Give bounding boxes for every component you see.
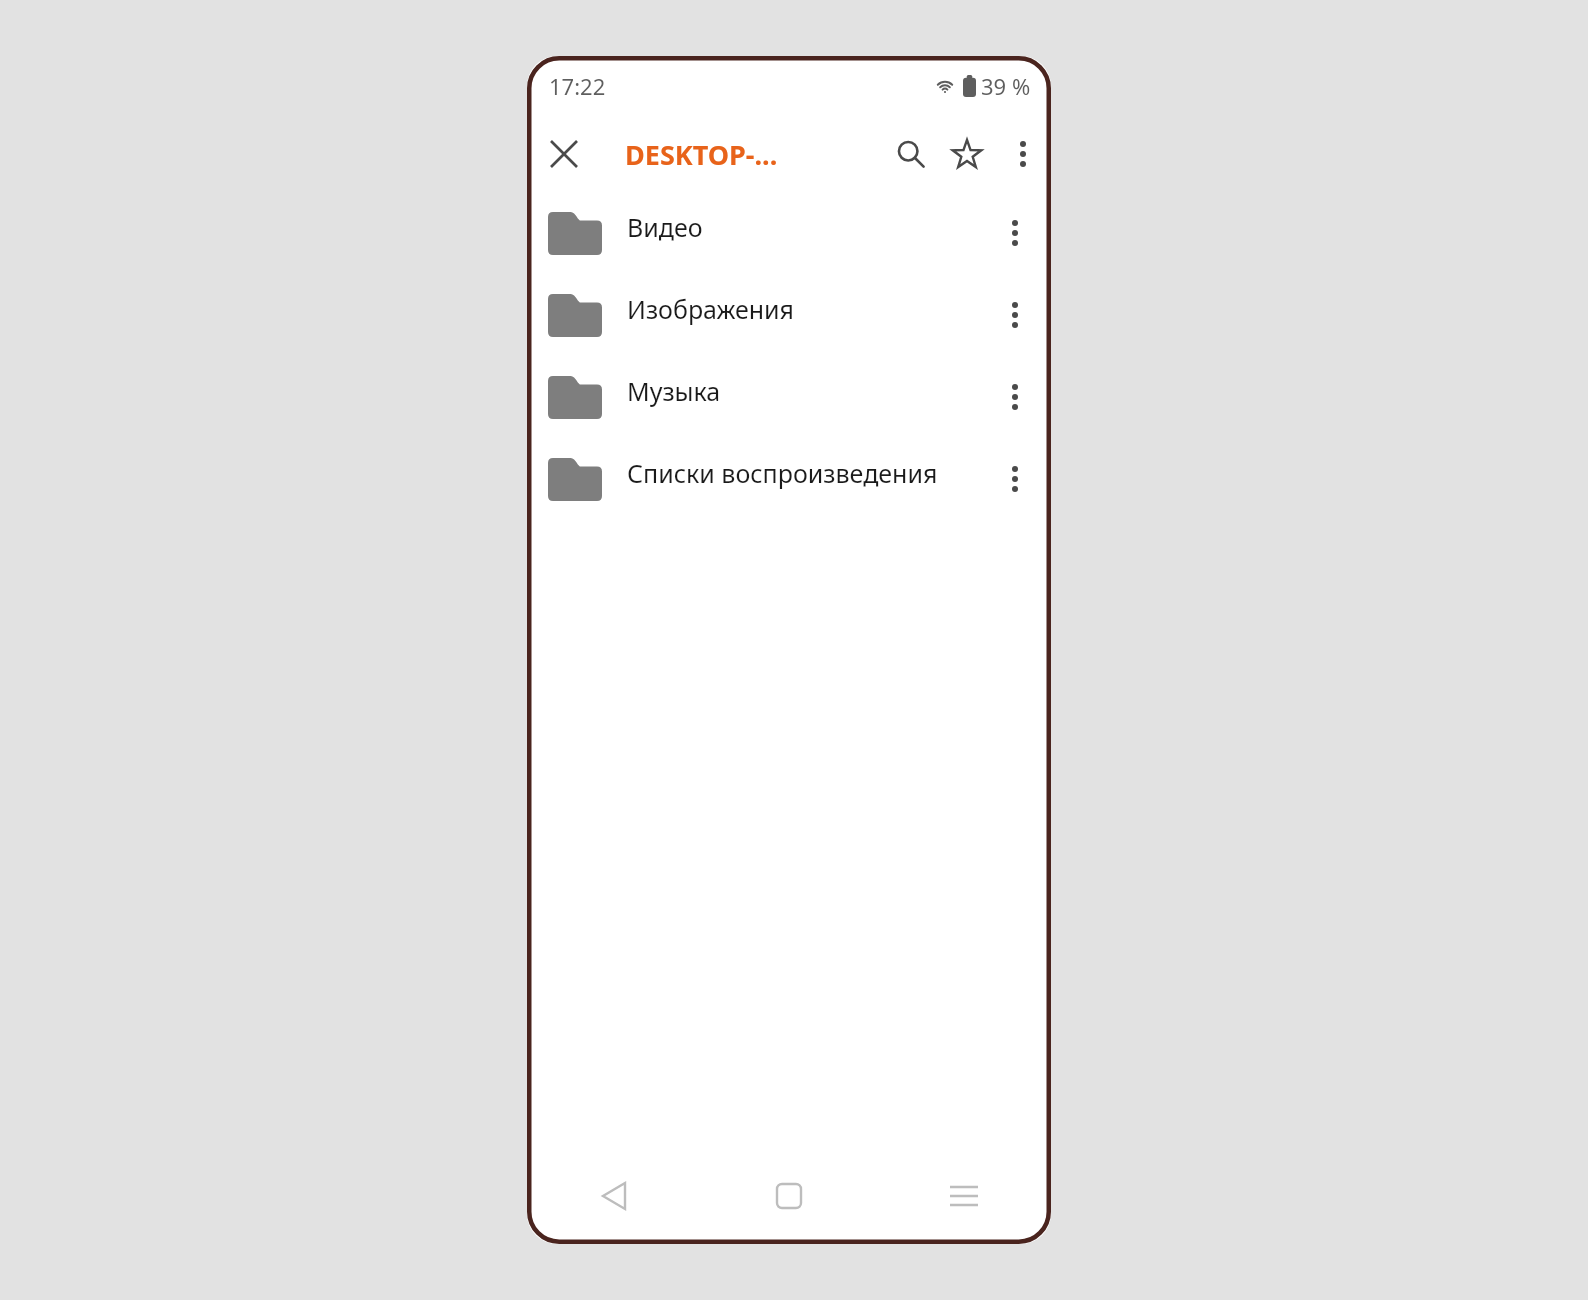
button[interactable]: Recent apps: [876, 1148, 1051, 1244]
staticText: Изображения: [627, 292, 987, 326]
staticText: Видео: [627, 210, 987, 244]
button[interactable]: Search: [883, 126, 939, 182]
button[interactable]: Close: [538, 128, 590, 180]
staticText: 39 %: [981, 71, 1031, 101]
staticText: Списки воспроизведения: [627, 456, 987, 490]
button[interactable]: Back: [527, 1148, 701, 1244]
button[interactable]: Favorite: [939, 126, 995, 182]
button[interactable]: Home: [701, 1148, 876, 1244]
button[interactable]: Изображения: [527, 274, 1051, 356]
staticText: DESKTOP-...: [625, 136, 778, 173]
button[interactable]: Item options: [987, 369, 1043, 425]
button[interactable]: More options: [995, 126, 1051, 182]
staticText: Музыка: [627, 374, 987, 408]
button[interactable]: Музыка: [527, 356, 1051, 438]
button[interactable]: Item options: [987, 205, 1043, 261]
button[interactable]: Списки воспроизведения: [527, 438, 1051, 520]
button[interactable]: Item options: [987, 451, 1043, 507]
button[interactable]: Item options: [987, 287, 1043, 343]
staticText: 17:22: [549, 71, 606, 101]
button[interactable]: Видео: [527, 192, 1051, 274]
